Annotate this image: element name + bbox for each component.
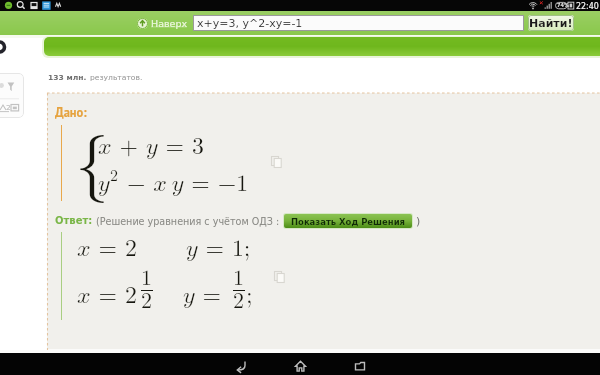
staticText: 𝑥 = 2 [77,237,137,261]
staticText: Ответ: [55,215,93,227]
staticText: 𝑥 + 𝑦 = 3 [98,135,204,159]
staticText: − 𝑥 𝑦 = −1 [119,172,249,196]
staticText: 𝑦 = [183,284,222,308]
staticText: ) [416,215,421,228]
staticText: 1 [233,267,245,289]
staticText: 74% [557,2,569,8]
staticText: Найти! [529,17,573,30]
staticText: Показать Ход Решения [291,216,405,227]
other: Копировать [270,155,283,168]
staticText: 2 [141,290,153,312]
other: Наверх [137,18,148,29]
staticText: 22:40 [576,1,599,11]
staticText: 𝑦 = 1; [186,237,251,261]
staticText: 1 [141,267,153,289]
staticText: 133 млн. [48,73,87,82]
button[interactable]: Home [287,353,313,375]
button[interactable]: Back [228,353,254,375]
button[interactable]: x+y=3, y^2-xy=-1 [193,15,524,31]
staticText: Дано: [55,104,87,120]
staticText: ; [246,284,253,308]
staticText: 2 [6,103,11,112]
staticText: 2 [233,290,245,312]
button[interactable]: Найти! [528,15,574,31]
button[interactable]: Recents [348,353,374,375]
other: Копировать [273,270,286,283]
staticText: (Решение уравнения с учётом ОДЗ : [96,216,280,227]
staticText: Наверх [151,18,188,29]
staticText: 2 [110,168,119,184]
staticText: { [75,131,110,199]
staticText: результатов. [90,73,143,82]
staticText: 𝑦 [98,172,110,196]
button[interactable]: Показать Ход Решения [291,214,405,228]
button[interactable]: Наверх [137,16,188,30]
staticText: 𝑥 = 2 [77,284,137,308]
staticText: x+y=3, y^2-xy=-1 [197,17,303,30]
